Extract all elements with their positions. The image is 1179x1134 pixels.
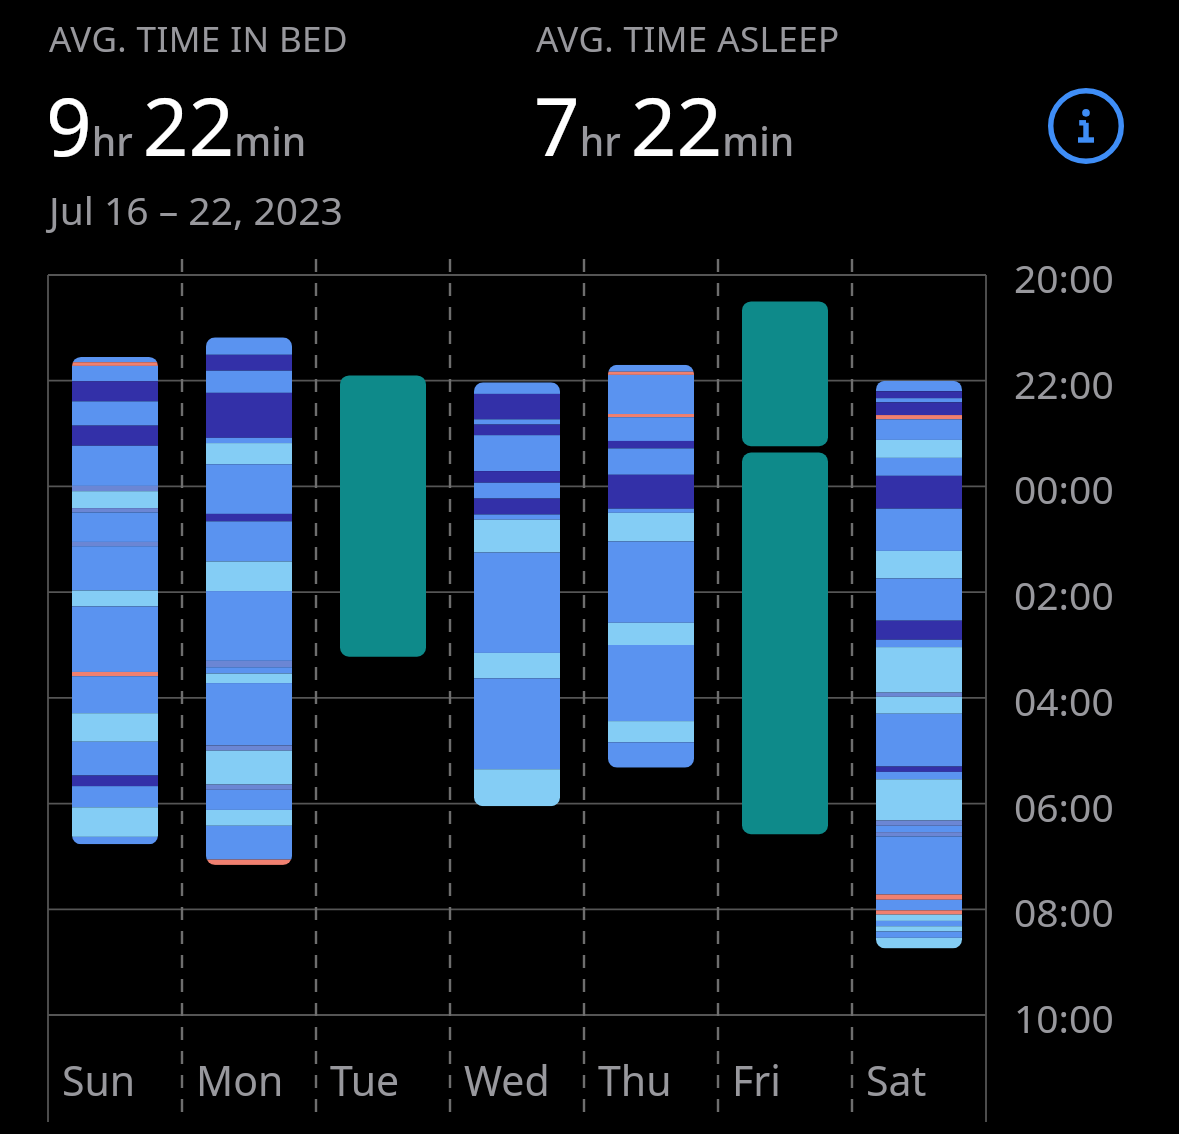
staticText: 22:00: [1014, 357, 1114, 410]
staticText: 06:00: [1014, 780, 1114, 833]
staticText: 00:00: [1014, 462, 1114, 515]
staticText: 02:00: [1014, 568, 1114, 621]
staticText: AVG. TIME ASLEEP: [536, 15, 840, 63]
button[interactable]: Information about sleep data: [1046, 86, 1126, 166]
staticText: Wed: [464, 1052, 550, 1108]
staticText: Fri: [732, 1052, 781, 1108]
staticText: Jul 16 – 22, 2023: [49, 183, 343, 236]
staticText: Thu: [598, 1052, 672, 1108]
staticText: 04:00: [1014, 674, 1114, 727]
staticText: AVG. TIME IN BED: [49, 15, 348, 63]
staticText: Sat: [866, 1052, 927, 1108]
staticText: 7hr 22min: [534, 70, 795, 179]
staticText: Sun: [62, 1052, 136, 1108]
staticText: 08:00: [1014, 885, 1114, 938]
staticText: Mon: [196, 1052, 284, 1108]
staticText: 20:00: [1014, 251, 1114, 304]
staticText: 10:00: [1014, 991, 1114, 1044]
staticText: Tue: [330, 1052, 400, 1108]
staticText: 9hr 22min: [46, 70, 307, 179]
